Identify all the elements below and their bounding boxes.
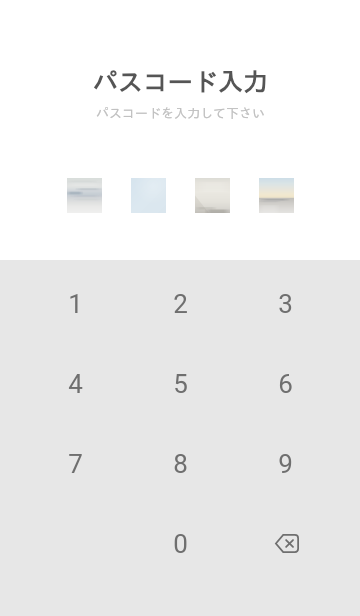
button[interactable]: 2 <box>140 264 220 344</box>
button[interactable]: 7 <box>35 424 115 504</box>
button[interactable]: 5 <box>140 344 220 424</box>
staticText: 8 <box>173 449 188 479</box>
staticText: 7 <box>68 449 83 479</box>
staticText: パスコードを入力して下さい <box>96 107 265 120</box>
staticText: パスコード入力 <box>93 69 268 94</box>
button[interactable]: Delete <box>245 504 325 584</box>
staticText: 6 <box>278 369 293 399</box>
staticText: 9 <box>278 449 293 479</box>
button[interactable]: 9 <box>245 424 325 504</box>
button[interactable]: 0 <box>140 504 220 584</box>
staticText: 2 <box>173 289 188 319</box>
button[interactable]: 3 <box>245 264 325 344</box>
staticText: 0 <box>173 529 188 559</box>
button[interactable]: 8 <box>140 424 220 504</box>
staticText: 1 <box>68 289 83 319</box>
staticText: 4 <box>68 369 83 399</box>
button[interactable]: 4 <box>35 344 115 424</box>
button[interactable]: 1 <box>35 264 115 344</box>
staticText: 5 <box>173 369 188 399</box>
staticText: 3 <box>278 289 293 319</box>
button[interactable]: 6 <box>245 344 325 424</box>
